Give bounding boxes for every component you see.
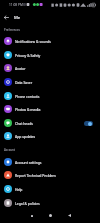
button[interactable]: Chat heads [0,116,100,130]
button[interactable]: Data Saver [0,75,100,89]
button[interactable]: Notifications & sounds [0,34,100,48]
button[interactable]: Toggle Chat heads [84,121,93,126]
button[interactable]: Photos & media [0,102,100,116]
staticText: Avatar [15,66,26,71]
staticText: Legal & policies [15,201,40,206]
staticText: Help [15,187,23,192]
staticText: Privacy & Safety [15,53,41,58]
staticText: Preferences [4,28,20,32]
staticText: Chat heads [15,121,33,126]
staticText: Phone contacts [15,94,40,99]
button[interactable]: Home [41,208,60,223]
button[interactable]: Privacy & Safety [0,48,100,62]
staticText: App updates [15,134,36,139]
staticText: Report Technical Problem [15,173,56,178]
staticText: Notifications & sounds [15,39,51,44]
button[interactable]: Legal & policies [0,196,100,210]
button[interactable]: App updates [0,129,100,143]
button[interactable]: Recent apps [22,208,41,223]
staticText: Data Saver [15,80,33,85]
button[interactable]: Report Technical Problem [0,168,100,182]
button[interactable]: Phone contacts [0,89,100,103]
button[interactable]: Back [60,208,79,223]
staticText: Me [14,15,21,21]
staticText: Account [4,148,15,152]
staticText: Photos & media [15,107,41,112]
staticText: Account settings [15,160,42,165]
button[interactable]: Back [1,12,12,23]
button[interactable]: Account settings [0,155,100,169]
button[interactable]: Avatar [0,61,100,75]
staticText: 11:08 PM [9,3,23,7]
button[interactable]: Help [0,182,100,196]
